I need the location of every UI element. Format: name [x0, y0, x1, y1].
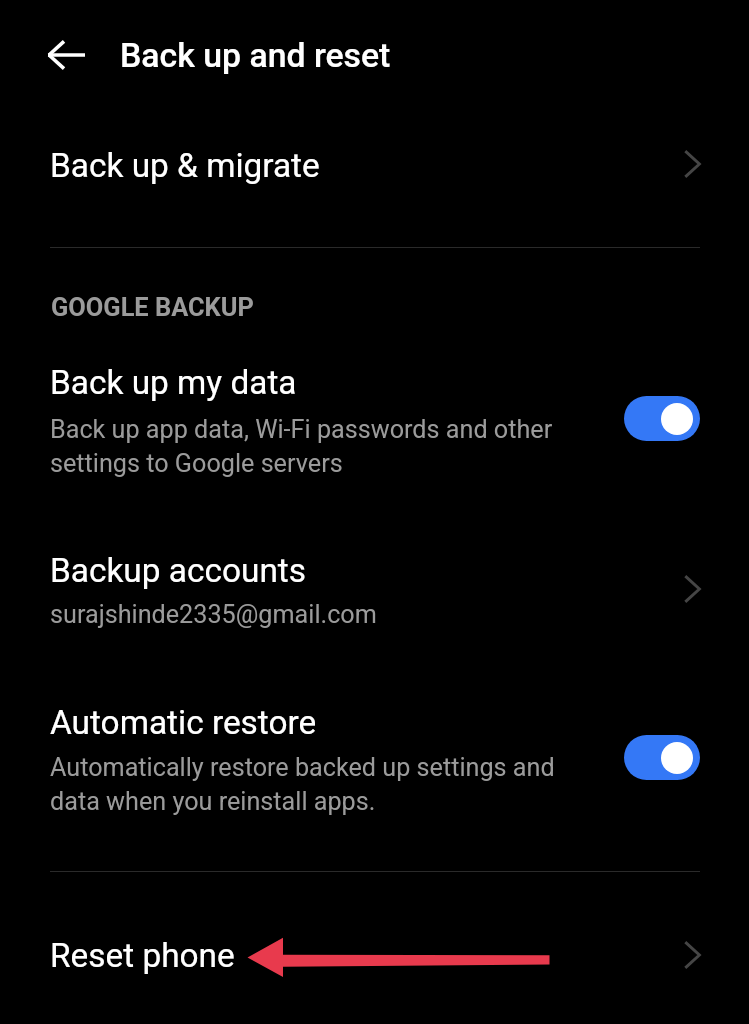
- staticText: Reset phone: [50, 936, 235, 975]
- staticText: Back up my data: [50, 363, 297, 402]
- button[interactable]: Back up & migrate: [0, 114, 749, 224]
- button[interactable]: Automatic restore: [0, 684, 749, 834]
- button[interactable]: Backup accounts: [0, 530, 749, 650]
- staticText: Back up & migrate: [50, 146, 320, 185]
- button[interactable]: Reset phone: [0, 905, 749, 1015]
- button[interactable]: Back up my data: [0, 345, 749, 495]
- staticText: Back up and reset: [120, 36, 391, 76]
- staticText: surajshinde2335@gmail.com: [50, 600, 377, 630]
- staticText: Automatic restore: [50, 703, 317, 742]
- button[interactable]: Toggle, on: [624, 735, 700, 780]
- staticText: Back up app data, Wi-Fi passwords and ot…: [50, 415, 570, 478]
- staticText: Backup accounts: [50, 551, 306, 590]
- staticText: GOOGLE BACKUP: [51, 292, 254, 322]
- button[interactable]: Toggle, on: [624, 396, 700, 441]
- staticText: Automatically restore backed up settings…: [50, 753, 570, 816]
- button[interactable]: Navigate up: [38, 27, 94, 83]
